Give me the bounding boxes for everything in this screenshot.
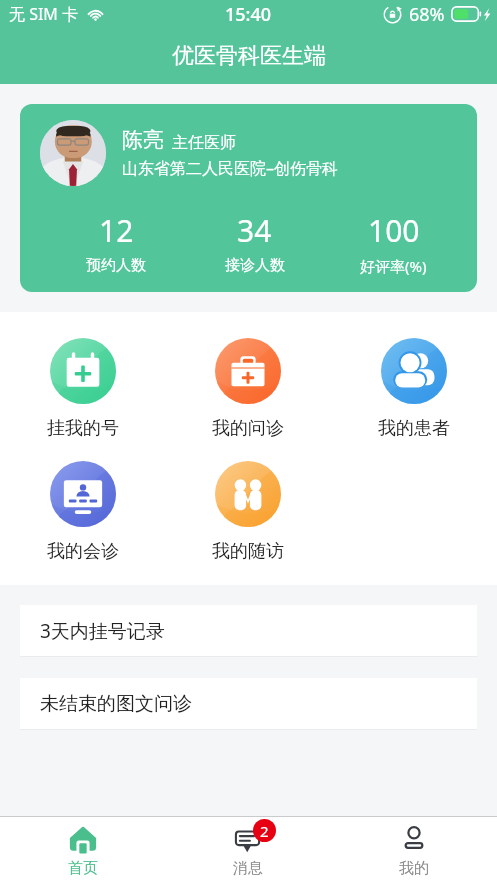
button[interactable]: 首页 xyxy=(0,817,165,883)
staticText: 优医骨科医生端 xyxy=(172,42,326,70)
staticText: 100 xyxy=(368,210,420,251)
staticText: 我的患者 xyxy=(378,417,450,440)
staticText: 34 xyxy=(237,210,272,251)
staticText: 2 xyxy=(260,821,269,841)
button[interactable]: 3天内挂号记录 xyxy=(20,605,477,657)
button[interactable]: 我的随访 xyxy=(165,461,331,563)
button[interactable]: 我的患者 xyxy=(331,338,497,440)
button[interactable]: 我的问诊 xyxy=(165,338,331,440)
staticText: 68% xyxy=(409,2,445,27)
staticText: 我的问诊 xyxy=(212,417,284,440)
staticText: 预约人数 xyxy=(86,256,146,275)
staticText: 接诊人数 xyxy=(225,256,285,275)
staticText: 消息 xyxy=(233,859,263,878)
staticText: 陈亮 xyxy=(122,127,164,153)
staticText: 3天内挂号记录 xyxy=(40,618,165,644)
button[interactable]: 陈亮 xyxy=(20,104,477,292)
button[interactable]: 未结束的图文问诊 xyxy=(20,678,477,730)
staticText: 我的会诊 xyxy=(47,540,119,563)
staticText: 好评率(%) xyxy=(360,256,427,276)
button[interactable]: 消息 xyxy=(165,817,331,883)
staticText: 山东省第二人民医院–创伤骨科 xyxy=(122,157,339,179)
staticText: 我的 xyxy=(399,859,429,878)
staticText: 15:40 xyxy=(225,2,272,27)
staticText: 我的随访 xyxy=(212,540,284,563)
staticText: 首页 xyxy=(68,859,98,878)
staticText: 主任医师 xyxy=(172,133,236,153)
button[interactable]: 我的 xyxy=(331,817,497,883)
staticText: 12 xyxy=(99,210,134,251)
staticText: 未结束的图文问诊 xyxy=(40,692,192,716)
button[interactable]: 挂我的号 xyxy=(0,338,165,440)
staticText: 挂我的号 xyxy=(47,417,119,440)
button[interactable]: 我的会诊 xyxy=(0,461,165,563)
staticText: 无 SIM 卡 xyxy=(9,3,79,25)
